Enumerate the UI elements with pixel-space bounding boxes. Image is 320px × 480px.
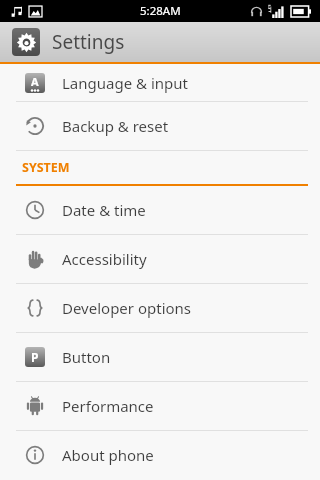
button[interactable]: Developer options bbox=[0, 284, 320, 332]
staticText: Backup & reset bbox=[62, 116, 169, 136]
staticText: Accessibility bbox=[62, 249, 147, 269]
staticText: Language & input bbox=[62, 73, 188, 93]
staticText: Settings bbox=[52, 29, 125, 55]
staticText: About phone bbox=[62, 445, 154, 465]
staticText: 5:28AM bbox=[140, 3, 181, 19]
button[interactable]: P bbox=[0, 333, 320, 381]
button[interactable]: Performance bbox=[0, 382, 320, 430]
staticText: Performance bbox=[62, 396, 154, 416]
staticText: A bbox=[31, 74, 39, 89]
button[interactable]: Settings bbox=[0, 22, 320, 62]
staticText: P bbox=[31, 349, 39, 365]
staticText: SYSTEM bbox=[22, 159, 70, 176]
staticText: Date & time bbox=[62, 200, 146, 220]
staticText: Developer options bbox=[62, 298, 192, 318]
button[interactable]: About phone bbox=[0, 431, 320, 479]
button[interactable]: A bbox=[0, 64, 320, 101]
button[interactable]: Date & time bbox=[0, 186, 320, 234]
button[interactable]: Backup & reset bbox=[0, 102, 320, 150]
staticText: Button bbox=[62, 347, 111, 367]
button[interactable]: Accessibility bbox=[0, 235, 320, 283]
